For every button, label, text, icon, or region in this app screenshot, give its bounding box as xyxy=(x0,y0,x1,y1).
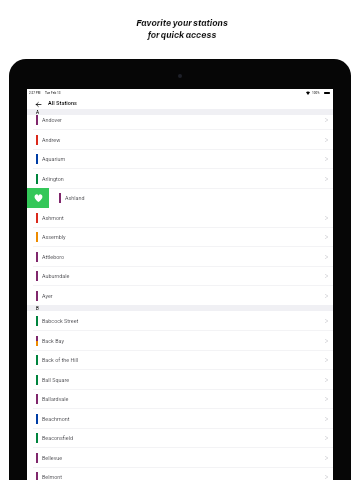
staticText: Arlington xyxy=(42,176,64,182)
staticText: 2:27 PM xyxy=(29,91,41,95)
staticText: Belmont xyxy=(42,474,63,480)
button[interactable]: Andrew xyxy=(27,130,333,150)
button[interactable]: Babcock Street xyxy=(27,311,333,331)
staticText: Ashmont xyxy=(42,215,64,221)
staticText: Tue Feb 13 xyxy=(45,91,61,95)
staticText: Back Bay xyxy=(42,338,64,344)
button[interactable]: Ball Square xyxy=(27,370,333,390)
button[interactable]: Arlington xyxy=(27,169,333,189)
button[interactable]: Bellevue xyxy=(27,448,333,468)
button[interactable]: Aquarium xyxy=(27,149,333,169)
button[interactable]: Auburndale xyxy=(27,266,333,286)
staticText: Ballardvale xyxy=(42,396,69,402)
staticText: Andrew xyxy=(42,137,61,143)
staticText: Attleboro xyxy=(42,254,65,260)
button[interactable]: Favorite xyxy=(27,188,49,208)
staticText: Ayer xyxy=(42,293,53,299)
staticText: A xyxy=(36,110,40,115)
button[interactable]: Ayer xyxy=(27,286,333,306)
staticText: B xyxy=(36,306,39,311)
button[interactable]: Andover xyxy=(27,110,333,130)
button[interactable]: Ballardvale xyxy=(27,389,333,409)
staticText: Back of the Hill xyxy=(42,357,79,363)
button[interactable]: Back Bay xyxy=(27,331,333,351)
staticText: All Stations xyxy=(48,100,77,107)
button[interactable]: Belmont xyxy=(27,467,333,480)
staticText: Andover xyxy=(42,117,62,123)
button[interactable]: Beaconsfield xyxy=(27,428,333,448)
staticText: Babcock Street xyxy=(42,318,79,324)
staticText: Beachmont xyxy=(42,416,70,422)
staticText: Auburndale xyxy=(42,273,70,279)
button[interactable]: Back xyxy=(32,98,44,110)
staticText: Favorite your stations for quick access xyxy=(2,19,360,40)
staticText: Bellevue xyxy=(42,455,63,461)
staticText: Aquarium xyxy=(42,156,66,162)
staticText: Beaconsfield xyxy=(42,435,74,441)
button[interactable]: Back of the Hill xyxy=(27,350,333,370)
staticText: 100% xyxy=(312,91,320,95)
button[interactable]: Assembly xyxy=(27,227,333,247)
staticText: Assembly xyxy=(42,234,66,240)
button[interactable]: Attleboro xyxy=(27,247,333,267)
button[interactable]: Beachmont xyxy=(27,409,333,429)
button[interactable]: Ashmont xyxy=(27,208,333,228)
staticText: Ball Square xyxy=(42,377,70,383)
staticText: Ashland xyxy=(65,195,85,201)
